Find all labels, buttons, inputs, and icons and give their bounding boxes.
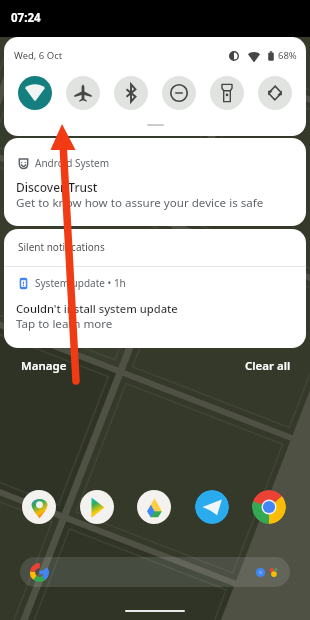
button[interactable]: Flashlight <box>210 76 244 110</box>
staticText: Silent notifications <box>18 240 105 254</box>
staticText: Clear all <box>245 358 291 374</box>
button[interactable]: Android System <box>4 138 306 226</box>
staticText: System update • 1h <box>35 276 126 290</box>
button[interactable]: Bluetooth <box>114 76 148 110</box>
button[interactable]: Chrome <box>252 490 286 524</box>
button[interactable]: Manage <box>21 358 67 374</box>
button[interactable]: Telegram <box>195 490 229 524</box>
button[interactable]: Drive <box>137 490 171 524</box>
button[interactable]: Airplane mode <box>66 76 100 110</box>
button[interactable]: Auto rotate <box>258 76 292 110</box>
staticText: Discover Trust <box>16 179 98 195</box>
button[interactable]: System update • 1h <box>4 267 306 348</box>
button[interactable]: Play Store <box>80 490 114 524</box>
button[interactable]: Wi-Fi <box>18 76 52 110</box>
button[interactable]: Maps <box>22 490 56 524</box>
button[interactable]: Do not disturb <box>162 76 196 110</box>
staticText: Tap to learn more <box>16 316 113 332</box>
button[interactable]: Clear all <box>245 358 291 374</box>
button[interactable]: Silent notifications <box>4 229 306 266</box>
staticText: 07:24 <box>11 10 41 26</box>
staticText: Get to know how to assure your device is… <box>16 195 264 211</box>
staticText: Android System <box>35 156 110 170</box>
staticText: 68% <box>278 49 297 62</box>
staticText: Wed, 6 Oct <box>14 49 63 62</box>
staticText: Couldn't install system update <box>16 301 178 316</box>
staticText: Manage <box>21 358 67 374</box>
button[interactable]: Search <box>20 557 290 587</box>
